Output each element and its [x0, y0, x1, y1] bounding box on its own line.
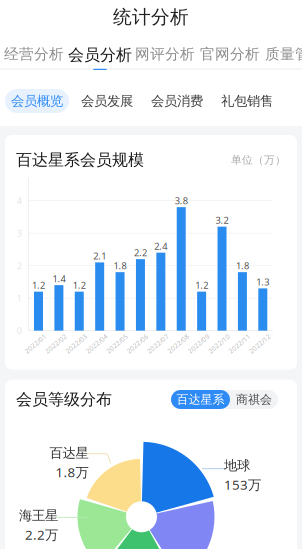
staticText: 3 — [17, 227, 22, 239]
staticText: 会员分析 — [68, 45, 132, 65]
button[interactable]: 经营分析 — [0, 32, 60, 70]
staticText: 4 — [17, 194, 22, 207]
staticText: 海王星 — [19, 507, 58, 524]
staticText: 2022/06 — [124, 339, 150, 348]
staticText: 2022/02 — [43, 339, 69, 348]
staticText: 百达星系会员规模 — [16, 150, 144, 170]
staticText: 1.8 — [236, 259, 249, 272]
staticText: 2.1 — [93, 250, 106, 262]
staticText: 统计分析 — [113, 5, 189, 28]
button[interactable]: 网评分析 — [0, 32, 60, 70]
staticText: 2022/05 — [104, 339, 130, 348]
button[interactable]: 礼包销售 — [0, 70, 64, 94]
staticText: 1.3 — [256, 276, 269, 288]
button[interactable]: 质量管理 — [0, 32, 60, 70]
button[interactable]: 会员发展 — [0, 70, 64, 94]
staticText: 3.8 — [175, 194, 188, 207]
staticText: 地球 — [224, 457, 250, 474]
button[interactable]: 会员分析 — [0, 32, 64, 72]
staticText: 2022/04 — [84, 339, 110, 348]
staticText: 网评分析 — [135, 45, 195, 63]
staticText: 0 — [17, 324, 22, 337]
staticText: 质量管理 — [265, 45, 302, 63]
staticText: 商祺会 — [236, 392, 272, 407]
staticText: 2022/08 — [165, 339, 191, 348]
staticText: 2022/09 — [186, 339, 212, 348]
staticText: 2022/01 — [22, 339, 48, 348]
staticText: 3.2 — [215, 214, 228, 226]
staticText: 官网分析 — [200, 45, 260, 63]
staticText: 1.2 — [32, 279, 45, 291]
staticText: 2.2万 — [25, 526, 58, 543]
staticText: 2022/12 — [247, 339, 273, 348]
staticText: 1 — [17, 292, 22, 304]
staticText: 会员概览 — [11, 93, 63, 109]
staticText: 2.2 — [134, 246, 147, 259]
button[interactable]: 官网分析 — [0, 32, 60, 70]
staticText: 2022/03 — [63, 339, 89, 348]
staticText: 153万 — [224, 476, 261, 493]
staticText: 1.2 — [195, 279, 208, 291]
staticText: 1.8万 — [55, 463, 88, 481]
staticText: 2022/10 — [206, 339, 232, 348]
button[interactable]: 商祺会 — [230, 390, 278, 409]
staticText: 经营分析 — [4, 45, 64, 63]
staticText: 2022/07 — [145, 339, 171, 348]
staticText: 会员发展 — [81, 93, 133, 109]
staticText: 百达星 — [49, 445, 88, 461]
staticText: 1.8 — [114, 259, 127, 272]
staticText: 2.4 — [154, 240, 167, 252]
staticText: 百达星系 — [176, 392, 224, 407]
staticText: 会员等级分布 — [16, 390, 112, 409]
staticText: 2 — [17, 259, 22, 272]
staticText: 1.4 — [52, 272, 65, 285]
button[interactable]: 百达星系 — [171, 390, 230, 409]
button[interactable]: 会员概览 — [0, 70, 64, 94]
staticText: 单位（万） — [231, 153, 286, 166]
staticText: 礼包销售 — [221, 93, 273, 109]
staticText: 2022/11 — [226, 339, 252, 348]
staticText: 会员消费 — [151, 93, 203, 109]
button[interactable]: 会员消费 — [0, 70, 64, 94]
staticText: 1.2 — [73, 279, 86, 291]
